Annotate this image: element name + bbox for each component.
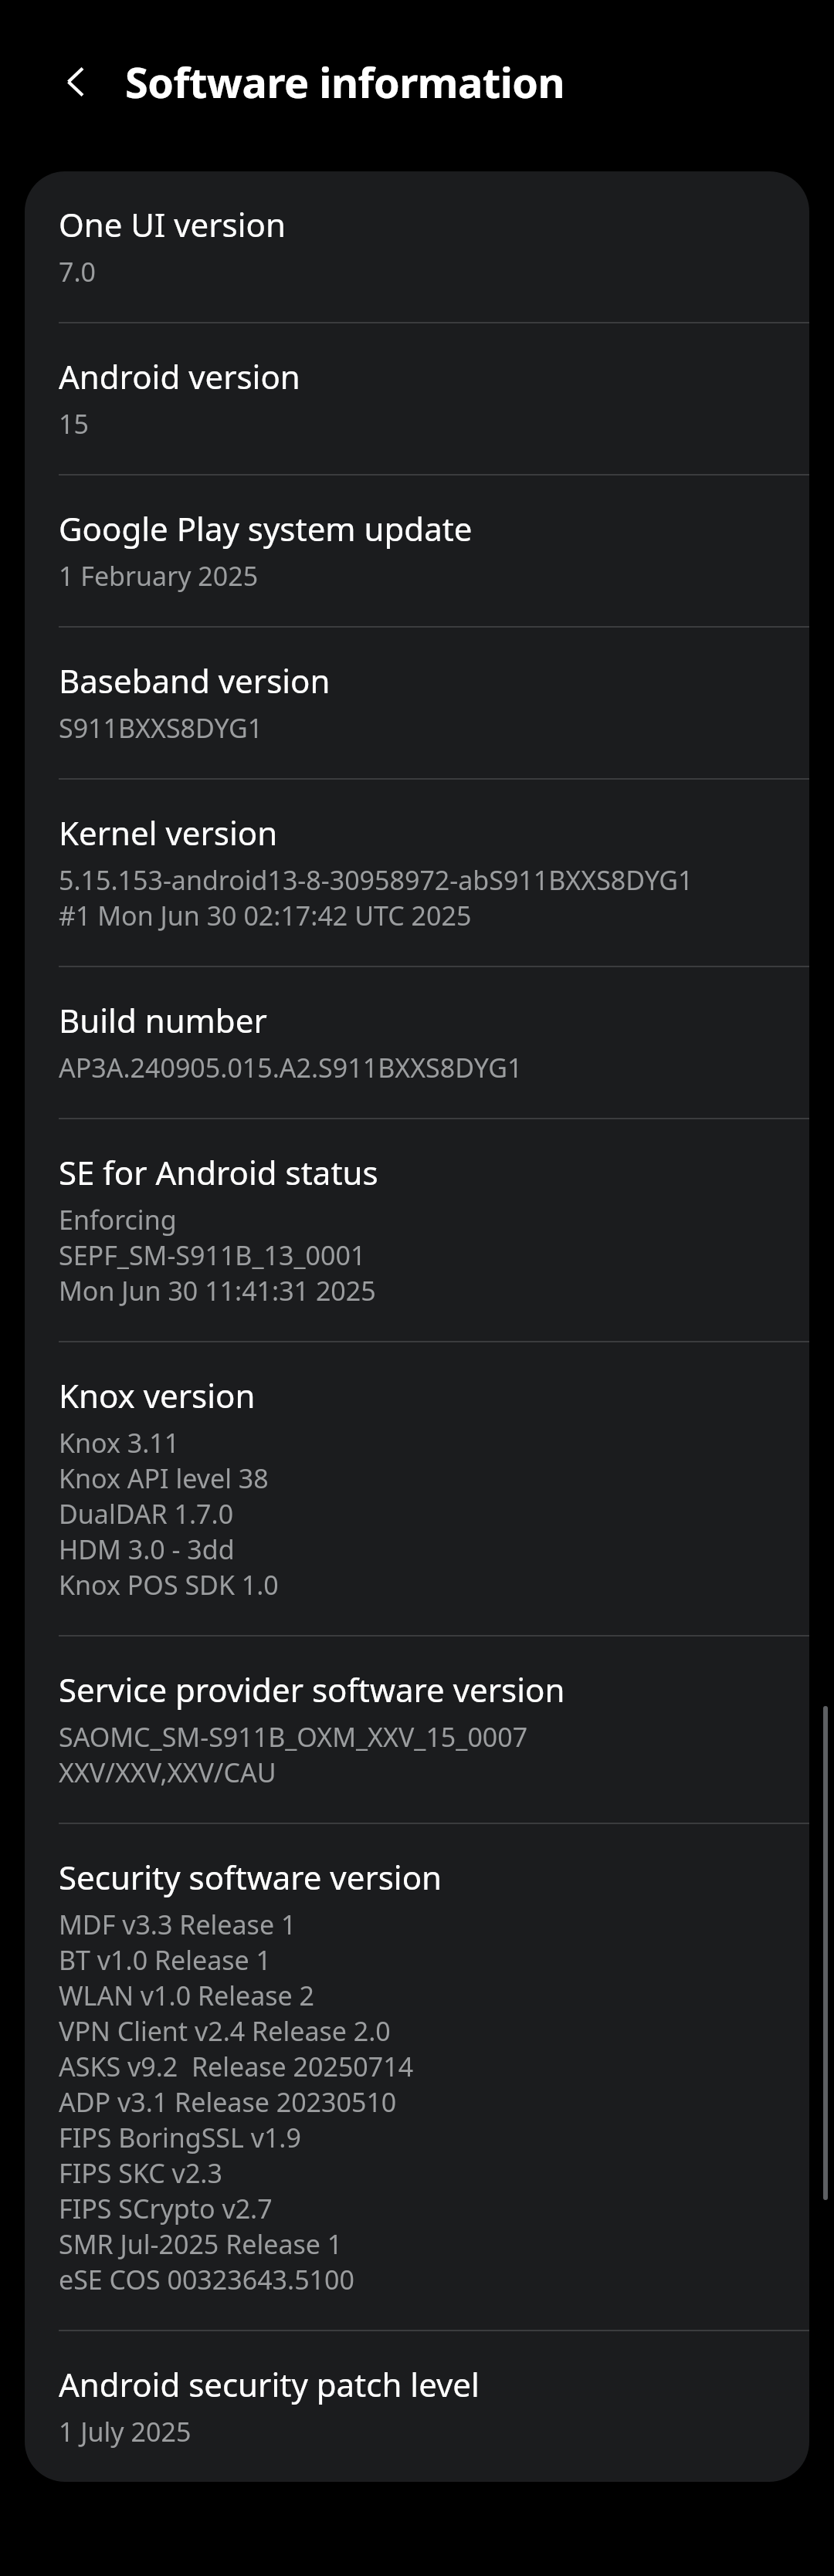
staticText: SMR Jul-2025 Release 1 <box>59 2226 343 2262</box>
staticText: Baseband version <box>59 658 331 702</box>
staticText: 5.15.153-android13-8-30958972-abS911BXXS… <box>59 862 693 898</box>
staticText: WLAN v1.0 Release 2 <box>59 1978 315 2013</box>
staticText: Kernel version <box>59 811 278 855</box>
staticText: Knox POS SDK 1.0 <box>59 1567 279 1603</box>
staticText: Google Play system update <box>59 506 473 550</box>
staticText: Knox API level 38 <box>59 1461 269 1496</box>
staticText: 1 February 2025 <box>59 558 259 594</box>
staticText: VPN Client v2.4 Release 2.0 <box>59 2013 391 2049</box>
staticText: DualDAR 1.7.0 <box>59 1496 234 1532</box>
staticText: SAOMC_SM-S911B_OXM_XXV_15_0007 <box>59 1719 528 1755</box>
button[interactable]: Knox version <box>25 1342 809 1635</box>
staticText: FIPS SCrypto v2.7 <box>59 2191 273 2226</box>
staticText: 7.0 <box>59 254 97 289</box>
staticText: AP3A.240905.015.A2.S911BXXS8DYG1 <box>59 1050 523 1085</box>
staticText: Security software version <box>59 1855 442 1899</box>
staticText: HDM 3.0 - 3dd <box>59 1532 235 1567</box>
staticText: BT v1.0 Release 1 <box>59 1942 272 1978</box>
staticText: Service provider software version <box>59 1667 565 1711</box>
staticText: S911BXXS8DYG1 <box>59 710 263 746</box>
staticText: SEPF_SM-S911B_13_0001 <box>59 1237 366 1273</box>
button[interactable]: Security software version <box>25 1824 809 2330</box>
staticText: #1 Mon Jun 30 02:17:42 UTC 2025 <box>59 898 472 933</box>
staticText: Enforcing <box>59 1202 177 1237</box>
staticText: Mon Jun 30 11:41:31 2025 <box>59 1273 376 1308</box>
staticText: SE for Android status <box>59 1150 378 1194</box>
staticText: One UI version <box>59 202 286 246</box>
staticText: Knox 3.11 <box>59 1425 180 1461</box>
staticText: Knox version <box>59 1373 256 1417</box>
staticText: XXV/XXV,XXV/CAU <box>59 1755 276 1790</box>
staticText: MDF v3.3 Release 1 <box>59 1907 297 1942</box>
staticText: eSE COS 00323643.5100 <box>59 2262 354 2297</box>
staticText: 15 <box>59 406 89 442</box>
button[interactable]: Back <box>48 53 105 110</box>
staticText: ADP v3.1 Release 20230510 <box>59 2084 397 2120</box>
button[interactable]: Kernel version <box>25 780 809 966</box>
staticText: Software information <box>125 53 565 110</box>
button[interactable]: One UI version <box>25 171 809 322</box>
button[interactable]: Service provider software version <box>25 1637 809 1823</box>
button[interactable]: Baseband version <box>25 628 809 778</box>
button[interactable]: Android version <box>25 323 809 474</box>
button[interactable]: Build number <box>25 967 809 1118</box>
staticText: ASKS v9.2 Release 20250714 <box>59 2049 414 2084</box>
staticText: FIPS SKC v2.3 <box>59 2155 222 2191</box>
button[interactable]: Android security patch level <box>25 2331 809 2482</box>
button[interactable]: SE for Android status <box>25 1119 809 1341</box>
staticText: FIPS BoringSSL v1.9 <box>59 2120 301 2155</box>
staticText: 1 July 2025 <box>59 2414 192 2449</box>
staticText: Android security patch level <box>59 2362 480 2406</box>
staticText: Build number <box>59 998 267 1042</box>
button[interactable]: Google Play system update <box>25 476 809 626</box>
staticText: Android version <box>59 354 300 398</box>
